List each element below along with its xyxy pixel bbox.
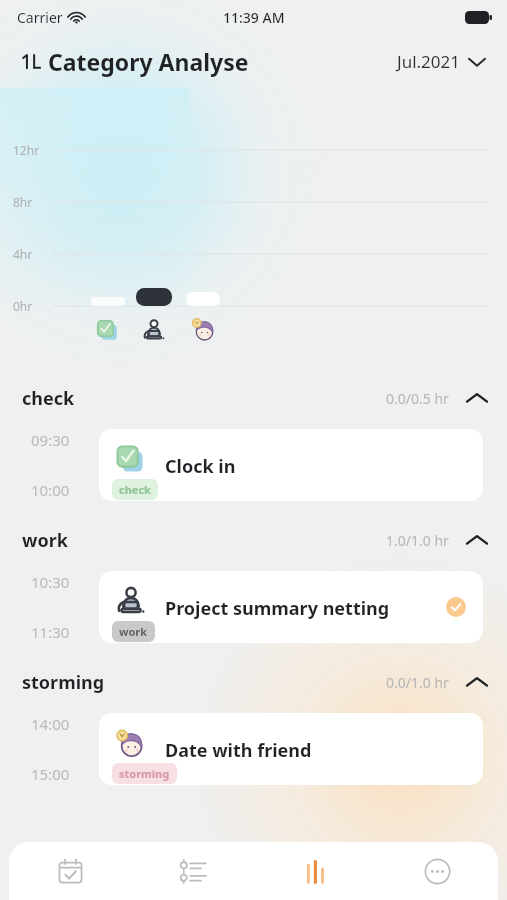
staticText: 15:00: [31, 764, 70, 784]
button[interactable]: check: [0, 378, 507, 418]
other: Completed: [446, 597, 466, 617]
staticText: storming: [22, 670, 105, 695]
button[interactable]: work: [0, 520, 507, 560]
staticText: 14:00: [31, 714, 70, 734]
staticText: check: [119, 482, 151, 497]
other: Collapse work: [467, 534, 487, 546]
button[interactable]: Clock in: [99, 429, 483, 501]
staticText: Carrier: [17, 8, 63, 27]
staticText: 11:39 AM: [223, 8, 285, 27]
button[interactable]: Statistics: [254, 842, 376, 900]
staticText: Category Analyse: [48, 46, 249, 77]
staticText: 09:30: [31, 430, 70, 450]
staticText: 12hr: [13, 142, 40, 158]
other: Collapse check: [467, 392, 487, 404]
staticText: Date with friend: [165, 738, 312, 763]
staticText: Clock in: [165, 454, 236, 479]
staticText: 0hr: [13, 298, 33, 314]
staticText: 10:00: [31, 480, 70, 500]
button[interactable]: Project summary netting: [99, 571, 483, 643]
button[interactable]: Timeline: [132, 842, 254, 900]
button[interactable]: storming: [0, 662, 507, 702]
staticText: 10:30: [31, 572, 70, 592]
other: Collapse storming: [467, 676, 487, 688]
staticText: work: [119, 624, 148, 639]
staticText: 8hr: [13, 194, 33, 210]
staticText: 0.0/1.0 hr: [386, 673, 449, 692]
staticText: 0.0/0.5 hr: [386, 389, 449, 408]
staticText: 4hr: [13, 246, 33, 262]
staticText: work: [22, 528, 68, 553]
staticText: Project summary netting: [165, 596, 390, 621]
staticText: 1.0/1.0 hr: [386, 531, 449, 550]
staticText: Jul.2021: [397, 50, 460, 73]
button[interactable]: Jul.2021: [393, 46, 489, 77]
staticText: check: [22, 386, 75, 411]
staticText: storming: [119, 766, 170, 781]
button[interactable]: Tasks: [9, 842, 132, 900]
staticText: 11:30: [31, 622, 70, 642]
button[interactable]: Date with friend: [99, 713, 483, 785]
button[interactable]: More: [376, 842, 498, 900]
